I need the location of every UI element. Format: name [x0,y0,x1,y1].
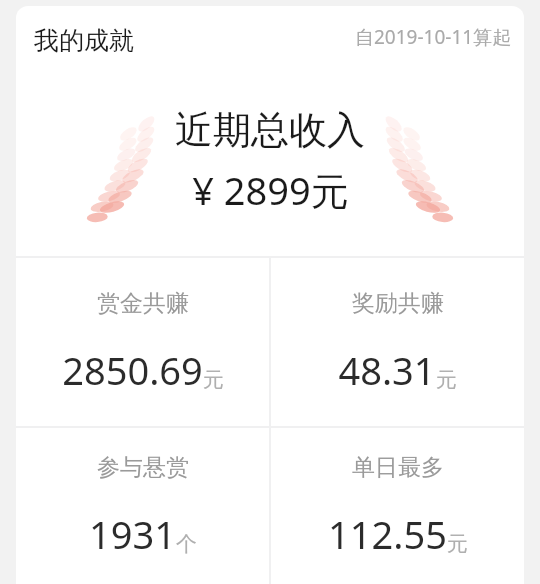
staticText: 元 [203,367,224,393]
button[interactable]: 单日最多 [271,428,524,584]
staticText: 48.31 [338,344,436,396]
staticText: 赏金共赚 [97,289,189,318]
staticText: 近期总收入 [175,106,365,154]
staticText: 自2019-10-11算起 [355,24,512,50]
staticText: 112.55 [328,508,447,560]
staticText: 个 [176,531,197,557]
staticText: ¥ 2899元 [192,164,349,216]
button[interactable]: 赏金共赚 [16,258,269,426]
staticText: 奖励共赚 [352,289,444,318]
button[interactable]: 奖励共赚 [271,258,524,426]
staticText: 元 [447,531,468,557]
staticText: 元 [436,367,457,393]
staticText: 参与悬赏 [97,453,189,482]
staticText: 1931 [89,508,176,560]
button[interactable]: 我的成就 [34,25,134,56]
button[interactable]: 参与悬赏 [16,428,269,584]
staticText: 2850.69 [62,344,203,396]
staticText: 单日最多 [352,453,444,482]
